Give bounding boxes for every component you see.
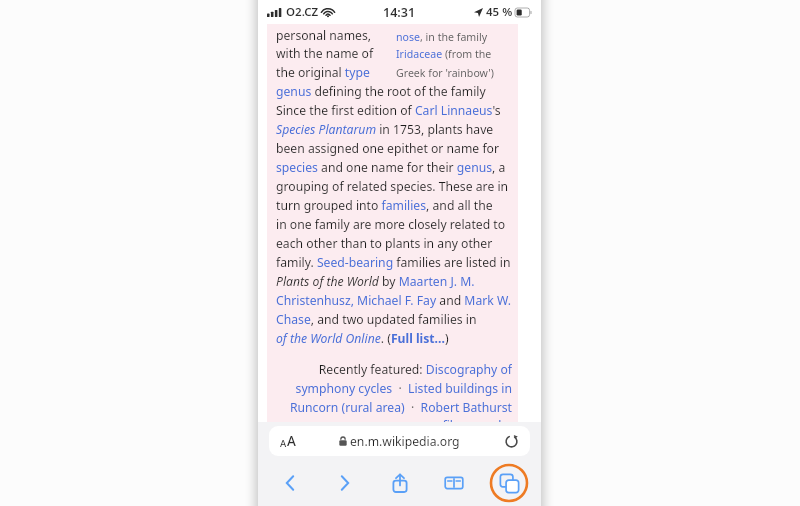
button[interactable]: of the World Online. (Full list...) <box>276 329 512 348</box>
staticText: Species Plantarum in 1753, plants have <box>276 121 494 138</box>
staticText: nose, in the family <box>396 30 488 44</box>
staticText: filmography <box>442 417 512 422</box>
button[interactable]: symphony cycles · Listed buildings in <box>276 379 512 398</box>
button[interactable]: Forward <box>325 463 365 503</box>
staticText: Christenhusz, Michael F. Fay and Mark W. <box>276 292 511 309</box>
staticText: genus defining the root of the family na… <box>276 83 512 100</box>
staticText: each other than to plants in any other <box>276 235 493 252</box>
staticText: with the name of <box>276 45 374 62</box>
button[interactable]: Chase, and two updated families in Plant… <box>276 310 512 329</box>
staticText: A <box>287 432 296 450</box>
staticText: turn grouped into families, and all the … <box>276 197 512 214</box>
button[interactable]: species and one name for their genus, a <box>276 158 512 177</box>
button[interactable]: Plants of the World by Maarten J. M. <box>276 272 512 291</box>
button[interactable]: Share <box>380 463 420 503</box>
button[interactable]: with the name of <box>276 44 392 63</box>
button[interactable]: in one family are more closely related t… <box>276 215 512 234</box>
staticText: species and one name for their genus, a <box>276 159 506 176</box>
staticText: personal names, <box>276 27 372 44</box>
button[interactable]: been assigned one epithet or name for th… <box>276 139 512 158</box>
button[interactable]: Runcorn (rural area) · Robert Bathurst <box>276 398 512 417</box>
button[interactable]: family. Seed-bearing families are listed… <box>276 253 512 272</box>
staticText: O2.CZ <box>286 4 319 20</box>
button[interactable]: Bookmarks <box>434 463 474 503</box>
button[interactable]: personal names, <box>276 25 392 44</box>
button[interactable]: Since the first edition of Carl Linnaeus… <box>276 101 512 120</box>
staticText: 14:31 <box>383 4 416 21</box>
staticText: Iridaceae (from the <box>396 47 492 61</box>
button[interactable]: Recently featured: Discography of Sibeli… <box>276 360 512 379</box>
staticText: the original type <box>276 64 370 81</box>
button[interactable]: Show tabs <box>489 463 529 503</box>
button[interactable]: Christenhusz, Michael F. Fay and Mark W. <box>276 291 512 310</box>
button[interactable]: genus defining the root of the family na… <box>276 82 512 101</box>
staticText: Since the first edition of Carl Linnaeus… <box>276 102 501 119</box>
button[interactable]: turn grouped into families, and all the … <box>276 196 512 215</box>
staticText: symphony cycles · Listed buildings in <box>295 380 512 397</box>
staticText: Plants of the World by Maarten J. M. <box>276 273 475 290</box>
staticText: of the World Online. (Full list...) <box>276 330 449 347</box>
staticText: Recently featured: Discography of Sibeli… <box>276 361 512 378</box>
button[interactable]: each other than to plants in any other <box>276 234 512 253</box>
staticText: 45 % <box>486 4 513 20</box>
button[interactable]: Text size options <box>269 426 530 456</box>
staticText: Runcorn (rural area) · Robert Bathurst <box>289 399 512 416</box>
staticText: Greek for 'rainbow') <box>396 66 494 80</box>
button[interactable]: the original type <box>276 63 392 82</box>
button[interactable]: Reload page <box>504 434 519 449</box>
staticText: grouping of related species. These are i… <box>276 178 509 195</box>
button[interactable]: Species Plantarum in 1753, plants have <box>276 120 512 139</box>
button[interactable]: Back <box>270 463 310 503</box>
staticText: been assigned one epithet or name for th… <box>276 140 512 157</box>
staticText: in one family are more closely related t… <box>276 216 506 233</box>
staticText: Chase, and two updated families in Plant… <box>276 311 512 328</box>
staticText: A <box>280 437 287 450</box>
other: Text size options <box>280 432 296 450</box>
button[interactable]: grouping of related species. These are i… <box>276 177 512 196</box>
staticText: en.m.wikipedia.org <box>350 433 460 450</box>
staticText: family. Seed-bearing families are listed… <box>276 254 511 271</box>
button[interactable]: filmography <box>276 417 512 422</box>
